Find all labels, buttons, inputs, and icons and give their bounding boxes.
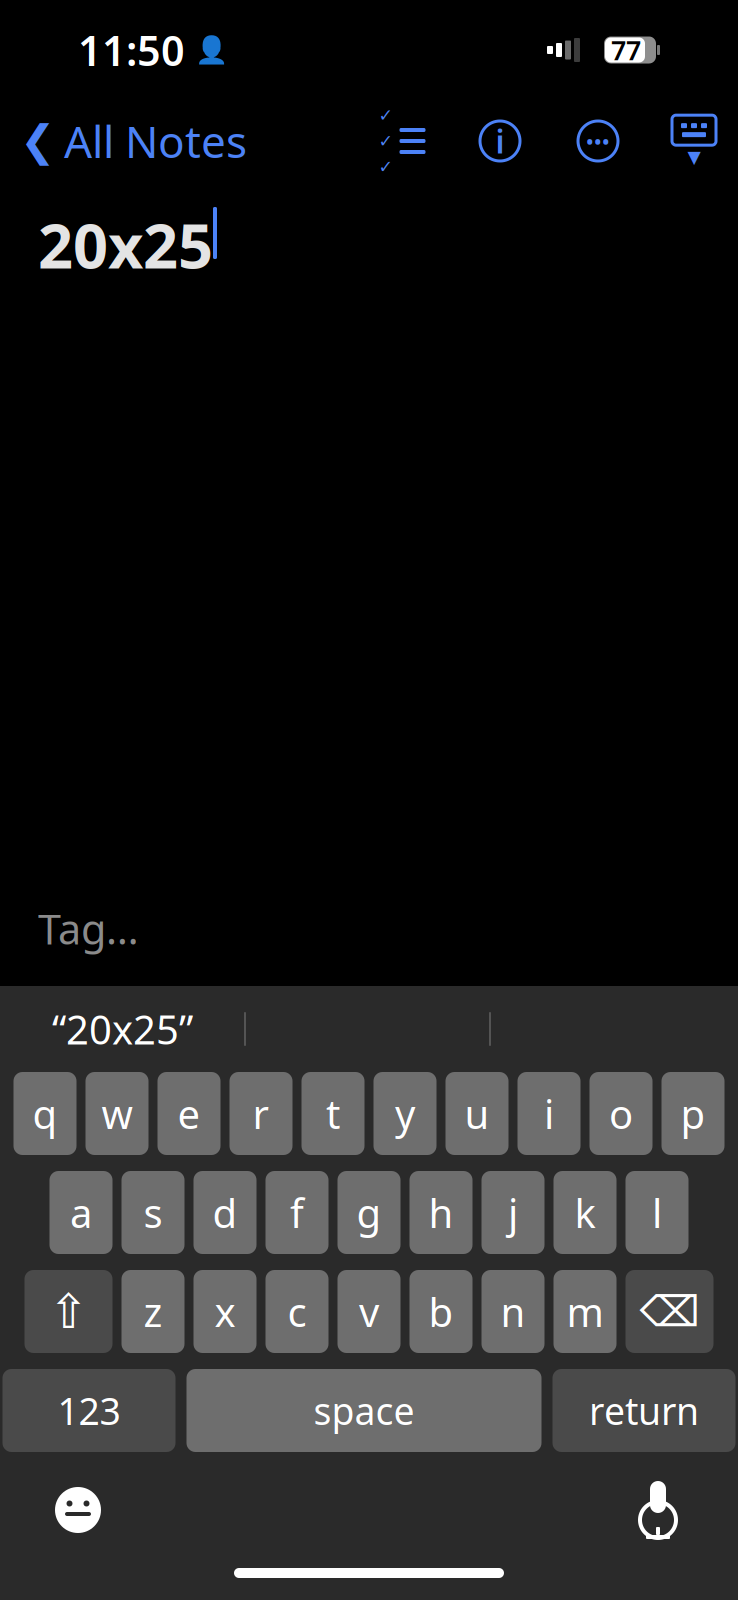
button[interactable]: e (157, 1072, 220, 1155)
staticText: c (287, 1285, 306, 1338)
button[interactable]: k (553, 1171, 616, 1254)
staticText: h (428, 1186, 453, 1239)
staticText: f (290, 1186, 304, 1239)
button[interactable]: g (337, 1171, 400, 1254)
staticText: ✓ (378, 131, 393, 151)
staticText: ••• (586, 128, 610, 154)
button[interactable]: r (229, 1072, 292, 1155)
staticText: m (566, 1285, 603, 1338)
button[interactable]: y (373, 1072, 436, 1155)
button[interactable]: Shift (24, 1270, 112, 1353)
staticText: All Notes (64, 112, 247, 170)
staticText: Tag… (38, 901, 139, 956)
button[interactable]: u (445, 1072, 508, 1155)
staticText: r (252, 1087, 269, 1140)
staticText: x (214, 1285, 235, 1338)
staticText: b (428, 1285, 453, 1338)
button[interactable]: space (186, 1369, 541, 1452)
button[interactable]: s (121, 1171, 184, 1254)
button[interactable]: 123 (2, 1369, 175, 1452)
button[interactable]: m (553, 1270, 616, 1353)
button[interactable]: Info (476, 119, 524, 163)
staticText: l (652, 1186, 662, 1239)
button[interactable]: c (265, 1270, 328, 1353)
staticText: s (143, 1186, 162, 1239)
button[interactable]: Dictate (630, 1480, 686, 1540)
staticText: ⇧ (48, 1284, 88, 1339)
staticText: return (589, 1386, 699, 1435)
staticText: ✓ (378, 157, 393, 176)
staticText: ✓ (378, 105, 393, 125)
staticText: a (70, 1186, 92, 1239)
staticText: g (356, 1186, 381, 1239)
staticText: w (101, 1087, 132, 1140)
button[interactable]: ❮ (0, 102, 247, 180)
staticText: ⌫ (639, 1287, 699, 1336)
button[interactable]: i (517, 1072, 580, 1155)
button[interactable]: Hide Keyboard (668, 116, 720, 166)
button[interactable]: Emoji (50, 1482, 106, 1538)
button[interactable]: f (265, 1171, 328, 1254)
button[interactable]: d (193, 1171, 256, 1254)
button[interactable]: j (481, 1171, 544, 1254)
button[interactable]: x (193, 1270, 256, 1353)
staticText: 123 (57, 1386, 120, 1435)
button[interactable]: h (409, 1171, 472, 1254)
button[interactable]: “20x25” (0, 997, 245, 1061)
staticText: j (508, 1186, 518, 1239)
button[interactable]: q (13, 1072, 76, 1155)
staticText: e (177, 1087, 200, 1140)
staticText: y (395, 1087, 415, 1140)
staticText: i (495, 120, 504, 162)
button[interactable]: Checklist (378, 119, 426, 163)
button[interactable]: a (49, 1171, 112, 1254)
staticText: 👤 (195, 35, 228, 65)
staticText: u (464, 1087, 489, 1140)
button[interactable]: return (552, 1369, 735, 1452)
staticText: n (500, 1285, 525, 1338)
staticText: t (326, 1087, 340, 1140)
button[interactable]: l (625, 1171, 688, 1254)
staticText: q (32, 1087, 57, 1140)
staticText: i (544, 1087, 554, 1140)
button[interactable]: v (337, 1270, 400, 1353)
staticText: z (143, 1285, 162, 1338)
staticText: space (313, 1386, 414, 1435)
button[interactable]: More (574, 119, 622, 163)
button[interactable]: t (301, 1072, 364, 1155)
staticText: 11:50 (78, 23, 185, 77)
staticText: 20x25 (38, 204, 213, 285)
staticText: o (609, 1087, 633, 1140)
staticText: ❮ (20, 117, 56, 165)
staticText: d (212, 1186, 237, 1239)
button[interactable]: n (481, 1270, 544, 1353)
button[interactable]: Delete (625, 1270, 713, 1353)
staticText: ▼ (687, 147, 700, 167)
staticText: p (680, 1087, 705, 1140)
staticText: v (359, 1285, 379, 1338)
button[interactable]: z (121, 1270, 184, 1353)
button[interactable]: b (409, 1270, 472, 1353)
button[interactable]: w (85, 1072, 148, 1155)
staticText: k (574, 1186, 595, 1239)
staticText: 77 (611, 32, 641, 68)
button[interactable]: o (589, 1072, 652, 1155)
staticText: “20x25” (52, 1002, 193, 1055)
button[interactable]: p (661, 1072, 724, 1155)
